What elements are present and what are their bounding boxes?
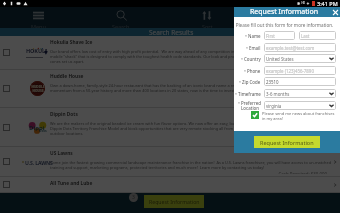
button[interactable]: United States xyxy=(264,54,336,63)
staticText: Timeframe xyxy=(238,91,261,97)
staticText: Search Results xyxy=(149,28,194,36)
button[interactable]: Request Information xyxy=(144,195,204,208)
button[interactable]: Hokulia Shave Ice logo xyxy=(0,36,340,70)
staticText: Last xyxy=(301,33,310,39)
staticText: * xyxy=(241,57,243,62)
staticText: * xyxy=(244,69,246,74)
button[interactable]: Please send me news about franchises in … xyxy=(251,111,338,121)
staticText: Our brand offers low cost of entry with … xyxy=(50,49,340,64)
staticText: Country xyxy=(244,56,261,62)
staticText: Search xyxy=(112,23,130,28)
staticText: HOKULIA xyxy=(26,47,48,56)
staticText: Request Information xyxy=(260,139,314,146)
button[interactable]: Dippin Dots logo xyxy=(0,108,340,147)
button[interactable]: Sort xyxy=(187,7,227,28)
staticText: * xyxy=(246,46,248,51)
staticText: 3 xyxy=(132,194,135,201)
button[interactable]: example.test@test.com xyxy=(264,43,336,52)
staticText: Please fill out this form for more infor… xyxy=(234,22,335,28)
staticText: example (123)456-7890 xyxy=(266,68,314,74)
staticText: HUDDLE HOUSE xyxy=(31,85,45,93)
staticText: Menu xyxy=(31,23,46,28)
staticText: Zip Code xyxy=(242,79,261,85)
other: U.S. Lawns logo xyxy=(22,158,53,166)
staticText: 3:41 PM xyxy=(317,0,338,7)
button[interactable]: Request Information xyxy=(254,136,320,148)
staticText: Request Information xyxy=(250,7,319,17)
staticText: Name xyxy=(248,33,261,39)
staticText: Email xyxy=(249,45,261,51)
button[interactable]: All Tune and Lube xyxy=(0,177,340,193)
staticText: Own a down-home, family-style 24-hour re… xyxy=(50,83,340,93)
button[interactable]: 3-6 months xyxy=(264,89,336,98)
staticText: Please send me news about franchises in … xyxy=(262,111,338,121)
staticText: virginia xyxy=(266,103,282,109)
staticText: Come join the fastest growing commercial… xyxy=(50,160,340,170)
staticText: Dippin Dots xyxy=(50,111,78,118)
other: Hokulia Shave Ice logo xyxy=(26,47,48,58)
staticText: Sort xyxy=(202,23,213,28)
button[interactable]: 23510 xyxy=(264,77,336,86)
button[interactable]: Search xyxy=(101,7,141,28)
button[interactable]: U.S. Lawns logo xyxy=(0,147,340,177)
staticText: * xyxy=(235,92,237,97)
button[interactable]: First xyxy=(264,31,295,40)
other: Dippin Dots logo xyxy=(26,121,48,134)
staticText: Dippin xyxy=(29,124,48,134)
staticText: * xyxy=(239,80,241,85)
staticText: ✱ ᴴᴰ ✦ xyxy=(297,1,310,6)
other: Huddle House logo xyxy=(30,81,45,96)
staticText: U.S. LAWNS xyxy=(25,159,53,166)
staticText: Huddle House xyxy=(50,73,84,80)
staticText: US Lawns xyxy=(50,150,73,157)
button[interactable]: Last xyxy=(299,31,336,40)
staticText: * xyxy=(245,34,247,39)
staticText: Phone xyxy=(247,68,261,74)
staticText: 3-6 months xyxy=(266,91,290,97)
staticText: Hokulia Shave Ice xyxy=(50,39,93,46)
button[interactable]: Menu xyxy=(18,7,58,28)
staticText: 23510 xyxy=(266,79,279,85)
button[interactable]: Huddle House logo xyxy=(0,70,340,108)
staticText: Dots xyxy=(39,128,47,133)
staticText: United States xyxy=(266,56,294,62)
button[interactable]: virginia xyxy=(264,101,336,110)
staticText: First xyxy=(266,33,275,39)
staticText: Preferred Location xyxy=(241,100,261,111)
staticText: Request Information xyxy=(149,198,200,205)
staticText: Cash Required: $30,000 xyxy=(50,171,327,174)
staticText: All Tune and Lube xyxy=(50,180,93,187)
staticText: * xyxy=(238,101,240,106)
staticText: We are the makers of the original beaded… xyxy=(50,121,340,136)
button[interactable]: example (123)456-7890 xyxy=(264,66,336,75)
button[interactable]: Close dialog xyxy=(330,7,340,17)
staticText: example.test@test.com xyxy=(266,45,315,51)
